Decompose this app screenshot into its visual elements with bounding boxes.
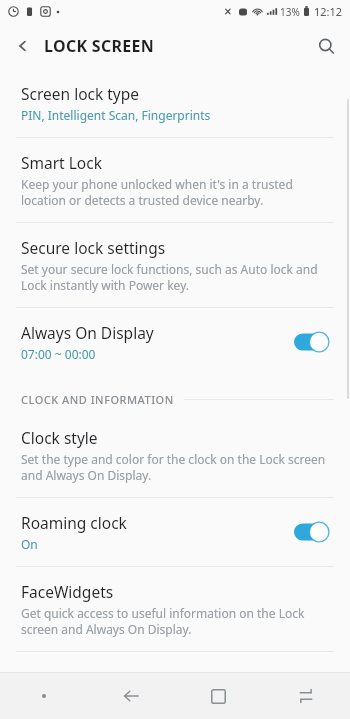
button[interactable]: Recents — [262, 673, 350, 719]
staticText: Set your secure lock functions, such as … — [21, 261, 330, 293]
staticText: Always On Display — [21, 322, 154, 343]
staticText: Clock style — [21, 427, 98, 448]
button[interactable]: Home — [174, 673, 262, 719]
button[interactable]: Toggle — [294, 521, 334, 543]
staticText: On — [21, 536, 38, 552]
staticText: LOCK SCREEN — [44, 35, 155, 57]
staticText: Get quick access to useful information o… — [21, 605, 330, 637]
button[interactable]: FaceWidgets — [0, 567, 350, 651]
staticText: 07:00 ~ 00:00 — [21, 346, 96, 362]
button[interactable]: Back — [87, 673, 174, 719]
button[interactable]: Search — [309, 29, 343, 63]
button[interactable]: Toggle — [294, 331, 334, 353]
staticText: Smart Lock — [21, 152, 102, 173]
button[interactable]: Always On Display — [0, 308, 350, 376]
staticText: Secure lock settings — [21, 237, 166, 258]
button[interactable]: Secure lock settings — [0, 223, 350, 307]
staticText: FaceWidgets — [21, 581, 114, 602]
staticText: CLOCK AND INFORMATION — [21, 392, 174, 407]
staticText: Keep your phone unlocked when it's in a … — [21, 176, 330, 208]
button[interactable]: Back — [6, 29, 40, 63]
staticText: Set the type and color for the clock on … — [21, 451, 330, 483]
staticText: Roaming clock — [21, 512, 127, 533]
staticText: Screen lock type — [21, 83, 140, 104]
staticText: PIN, Intelligent Scan, Fingerprints — [21, 107, 211, 123]
button[interactable]: Clock style — [0, 415, 350, 497]
staticText: 13% — [280, 5, 300, 19]
button[interactable]: Screen lock type — [0, 69, 350, 137]
staticText: 12:12 — [314, 4, 343, 19]
button[interactable]: Roaming clock — [0, 498, 350, 566]
button[interactable]: Smart Lock — [0, 138, 350, 222]
